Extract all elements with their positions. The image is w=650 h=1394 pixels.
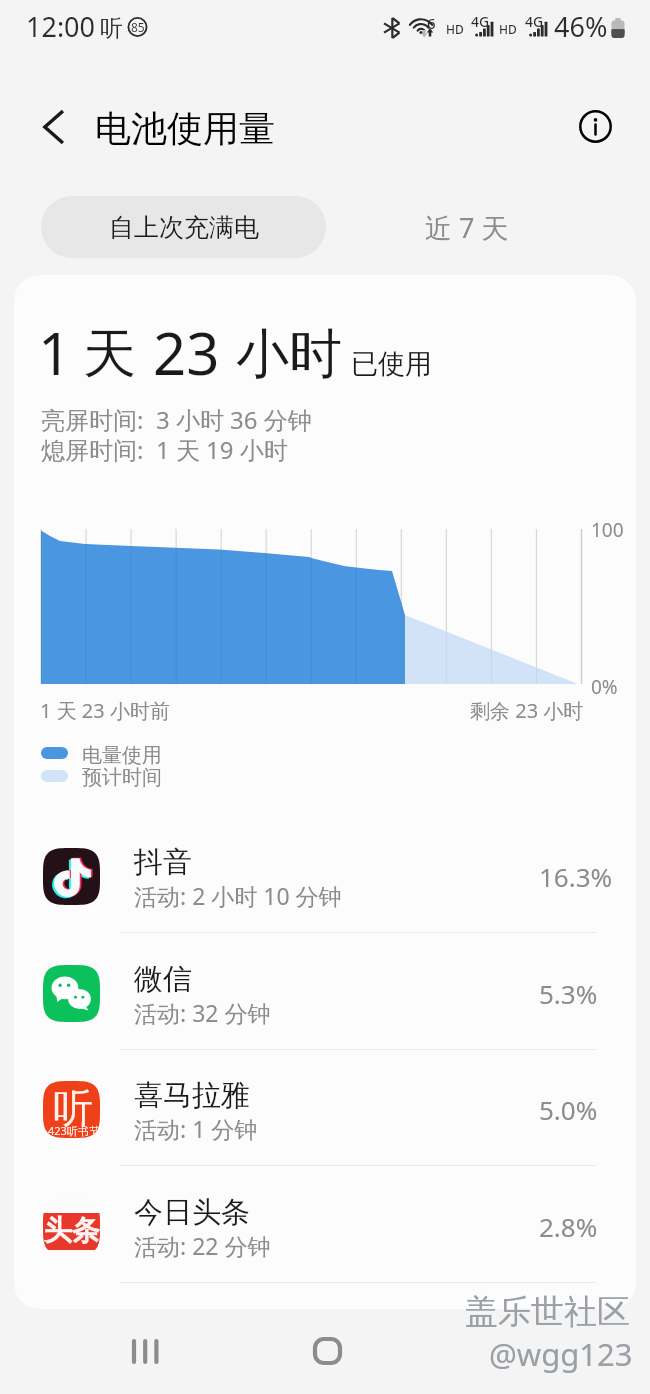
button[interactable]: 近 7 天 [326, 196, 607, 258]
staticText: 熄屏时间: 1 天 19 小时 [41, 433, 288, 466]
staticText: 预计时间 [82, 765, 162, 790]
staticText: 100 [591, 517, 624, 543]
staticText: 5.3% [539, 976, 598, 1011]
staticText: 16.3% [539, 859, 613, 894]
staticText: 1 天 23 小时前 [40, 697, 170, 724]
staticText: HD [446, 21, 464, 37]
staticText: 85 [131, 19, 145, 35]
staticText: 4G [525, 12, 544, 31]
staticText: 活动: 2 小时 10 分钟 [134, 880, 342, 911]
button[interactable]: Back [29, 103, 77, 151]
button[interactable]: 头条 [14, 1167, 636, 1283]
staticText: 活动: 32 分钟 [134, 997, 271, 1028]
button[interactable]: 自上次充满电 [41, 196, 326, 258]
staticText: 抖音 [134, 844, 192, 881]
staticText: 剩余 23 小时 [470, 697, 584, 724]
button[interactable]: 抖音 [14, 817, 636, 933]
staticText: 电池使用量 [95, 106, 275, 151]
button[interactable]: 微信 [14, 934, 636, 1050]
button[interactable]: Home [301, 1325, 353, 1377]
staticText: 头条 [44, 1213, 100, 1248]
button[interactable]: Recent apps [119, 1325, 171, 1377]
staticText: 今日头条 [134, 1194, 250, 1231]
staticText: 4G [471, 12, 490, 31]
staticText: 听 [53, 1083, 93, 1133]
staticText: HD [499, 21, 517, 37]
staticText: 亮屏时间: 3 小时 36 分钟 [41, 403, 312, 436]
staticText: @wgg123 [489, 1333, 633, 1375]
staticText: 听 [100, 14, 123, 43]
staticText: 6 [427, 13, 436, 33]
staticText: 活动: 22 分钟 [134, 1230, 271, 1261]
staticText: 12:00 [26, 8, 96, 45]
staticText: 微信 [134, 961, 192, 998]
button[interactable]: Information [572, 103, 618, 149]
staticText: 近 7 天 [425, 209, 509, 246]
staticText: 小时 [236, 321, 342, 388]
staticText: 活动: 1 分钟 [134, 1113, 258, 1144]
staticText: 自上次充满电 [109, 212, 259, 243]
staticText: 0% [591, 674, 618, 700]
staticText: 2.8% [539, 1209, 598, 1244]
staticText: 423听书节 [48, 1123, 100, 1138]
staticText: 23 [153, 313, 220, 392]
staticText: 1 [38, 313, 72, 392]
staticText: 5.0% [539, 1092, 598, 1127]
staticText: 喜马拉雅 [134, 1077, 250, 1114]
staticText: 46% [554, 8, 608, 45]
staticText: 盖乐世社区 [465, 1291, 630, 1333]
staticText: 已使用 [351, 347, 432, 381]
staticText: 天 [83, 321, 136, 388]
staticText: 电量使用 [82, 743, 162, 768]
button[interactable]: 听 [14, 1050, 636, 1166]
button[interactable]: Back [480, 1325, 532, 1377]
